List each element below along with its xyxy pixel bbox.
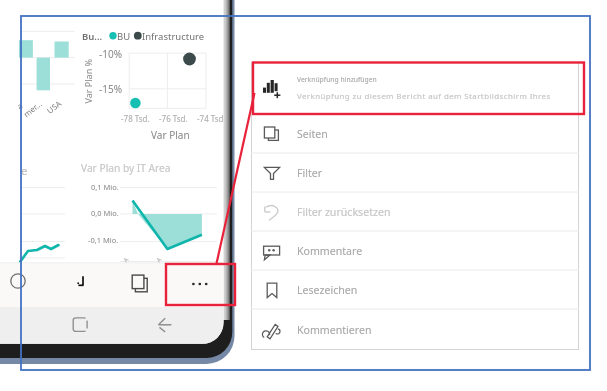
button[interactable]: Pages: [130, 273, 150, 293]
button[interactable]: Filter zurücksetzen: [251, 192, 579, 231]
button[interactable]: Filter: [251, 153, 579, 192]
staticText: -15%: [99, 82, 122, 96]
staticText: Kommentare: [297, 244, 363, 258]
staticText: 0,1 Mio.: [91, 182, 119, 192]
staticText: -10%: [99, 47, 122, 61]
button[interactable]: Back: [155, 314, 175, 334]
staticText: Filter: [297, 166, 323, 180]
staticText: -0,1 Mio.: [88, 235, 119, 245]
staticText: A: [122, 256, 130, 264]
staticText: Kommentieren: [297, 323, 372, 337]
staticText: -74 Tsd: [197, 113, 224, 124]
staticText: Var Plan by IT Area: [81, 161, 171, 175]
staticText: Bu...: [82, 30, 103, 43]
staticText: a: [14, 100, 25, 111]
staticText: Var Plan: [151, 128, 190, 142]
staticText: BU: [117, 30, 131, 43]
button[interactable]: Verknüpfung hinzufügen: [251, 62, 579, 114]
staticText: USA: [44, 97, 64, 116]
staticText: Infrastructure: [142, 30, 205, 43]
staticText: Lesezeichen: [297, 283, 358, 297]
staticText: mer...: [21, 98, 44, 119]
staticText: e: [21, 163, 28, 179]
button[interactable]: Reports: [74, 272, 90, 288]
button[interactable]: Seiten: [251, 114, 579, 153]
staticText: -78 Tsd.: [121, 113, 150, 124]
staticText: 0,0 Mio.: [91, 208, 119, 218]
button[interactable]: Lesezeichen: [251, 270, 579, 309]
staticText: Verknüpfung zu diesem Bericht auf dem St…: [297, 91, 579, 102]
button[interactable]: Recents: [71, 316, 89, 334]
staticText: -76 Tsd.: [159, 113, 188, 124]
staticText: Var Plan %: [81, 58, 93, 103]
button[interactable]: Home: [16, 273, 32, 289]
button[interactable]: More options: [188, 275, 211, 293]
staticText: Seiten: [297, 127, 328, 141]
button[interactable]: Kommentieren: [251, 309, 579, 350]
button[interactable]: Kommentare: [251, 231, 579, 270]
staticText: A: [155, 256, 163, 264]
staticText: Filter zurücksetzen: [297, 205, 391, 219]
staticText: Verknüpfung hinzufügen: [297, 75, 377, 84]
